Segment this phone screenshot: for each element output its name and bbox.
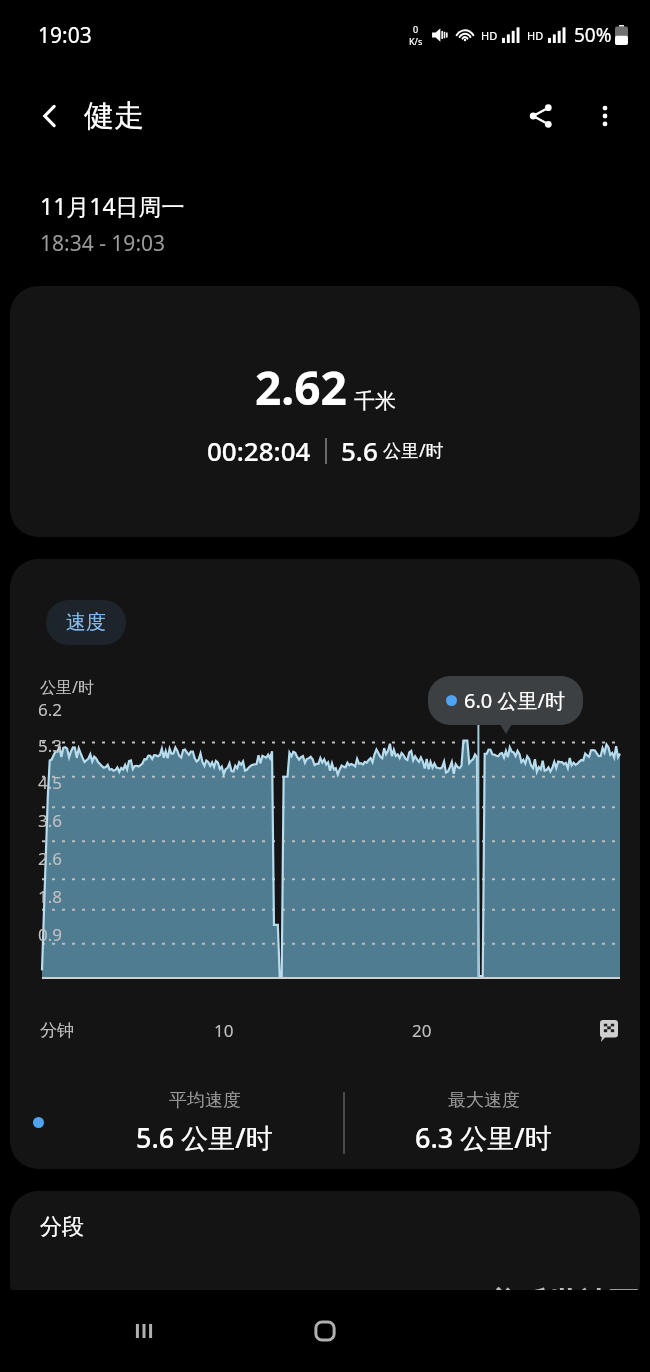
staticText: 2.6	[38, 847, 63, 870]
staticText: 00:28:04	[207, 433, 311, 468]
staticText: 20	[412, 1019, 432, 1042]
staticText: 6.3 公里/时	[415, 1119, 552, 1156]
staticText: 2.62	[255, 356, 347, 419]
button[interactable]: 2.62	[10, 286, 640, 537]
button[interactable]: More options	[578, 89, 632, 143]
staticText: 5.6	[341, 433, 378, 468]
staticText: 5.3	[38, 734, 63, 757]
staticText: 公里/时	[40, 676, 94, 698]
button[interactable]: 速度	[46, 600, 126, 645]
staticText: 6.0 公里/时	[464, 687, 565, 714]
staticText: 千米	[354, 388, 396, 414]
staticText: 10	[214, 1019, 234, 1042]
staticText: 18:34 - 19:03	[40, 229, 166, 258]
button[interactable]: 分段	[10, 1191, 640, 1311]
staticText: 50%	[574, 22, 612, 48]
staticText: 4.5	[38, 771, 63, 794]
staticText: 公里/时	[383, 438, 444, 463]
staticText: 3.6	[38, 809, 63, 832]
staticText: K/s	[409, 35, 423, 47]
staticText: 0.9	[38, 923, 63, 946]
button[interactable]: Share	[514, 89, 568, 143]
staticText: 11月14日周一	[40, 190, 185, 221]
button[interactable]: Home	[293, 1299, 357, 1363]
staticText: 6.2	[38, 698, 63, 721]
staticText: 最大速度	[448, 1089, 520, 1112]
staticText: 平均速度	[169, 1089, 241, 1112]
staticText: 分段	[40, 1213, 84, 1241]
staticText: 盖乐世社区	[488, 1285, 638, 1323]
staticText: 分钟	[40, 1020, 74, 1041]
staticText: 速度	[66, 610, 106, 635]
staticText: 0	[413, 23, 419, 35]
staticText: 健走	[84, 97, 144, 135]
staticText: 1.8	[38, 885, 63, 908]
staticText: HD	[527, 28, 544, 43]
staticText: 19:03	[38, 21, 92, 50]
staticText: 5.6 公里/时	[136, 1119, 273, 1156]
staticText: HD	[481, 28, 498, 43]
button[interactable]: Recents	[112, 1299, 176, 1363]
button[interactable]: Back	[22, 88, 78, 144]
